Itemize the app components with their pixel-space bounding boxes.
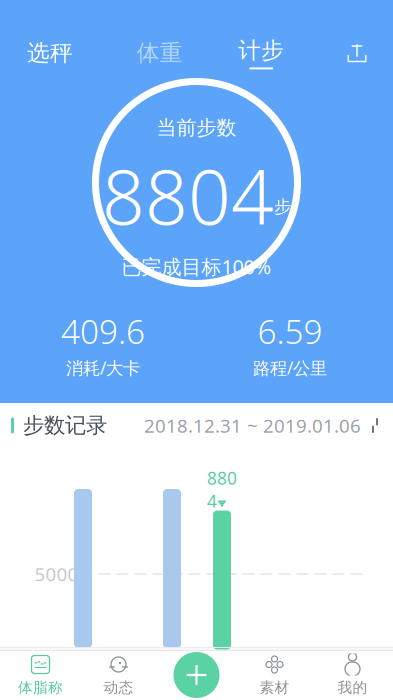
staticText: 8804	[207, 466, 237, 512]
staticText: 5000	[34, 562, 78, 586]
button[interactable]: 分享	[335, 36, 379, 70]
staticText: 动态	[103, 678, 133, 696]
button[interactable]: 计步	[233, 36, 289, 70]
button[interactable]: 体脂称	[1, 650, 79, 700]
staticText: 步	[274, 196, 291, 217]
staticText: 2018.12.31 ~ 2019.01.06	[144, 413, 361, 438]
staticText: 选秤	[27, 39, 73, 67]
button[interactable]: 选秤	[14, 36, 86, 70]
button[interactable]: 体重	[132, 36, 188, 70]
staticText: 消耗/大卡	[66, 356, 140, 379]
staticText: 步数记录	[23, 412, 107, 439]
staticText: 路程/公里	[253, 356, 327, 379]
button[interactable]: 我的	[313, 650, 391, 700]
button[interactable]: 动态	[79, 650, 157, 700]
staticText: 我的	[337, 678, 367, 696]
button[interactable]: 步数记录	[0, 403, 393, 448]
staticText: 8804	[102, 146, 274, 245]
staticText: 409.6	[61, 309, 145, 353]
staticText: 6.59	[257, 309, 322, 353]
staticText: 已完成目标100%	[121, 253, 271, 280]
button[interactable]: 添加	[170, 649, 222, 700]
staticText: 当前步数	[156, 115, 236, 140]
staticText: 计步	[238, 37, 284, 64]
staticText: 体重	[137, 39, 183, 67]
staticText: 素材	[259, 678, 289, 696]
button[interactable]: 素材	[235, 650, 313, 700]
staticText: 体脂称	[18, 678, 63, 696]
